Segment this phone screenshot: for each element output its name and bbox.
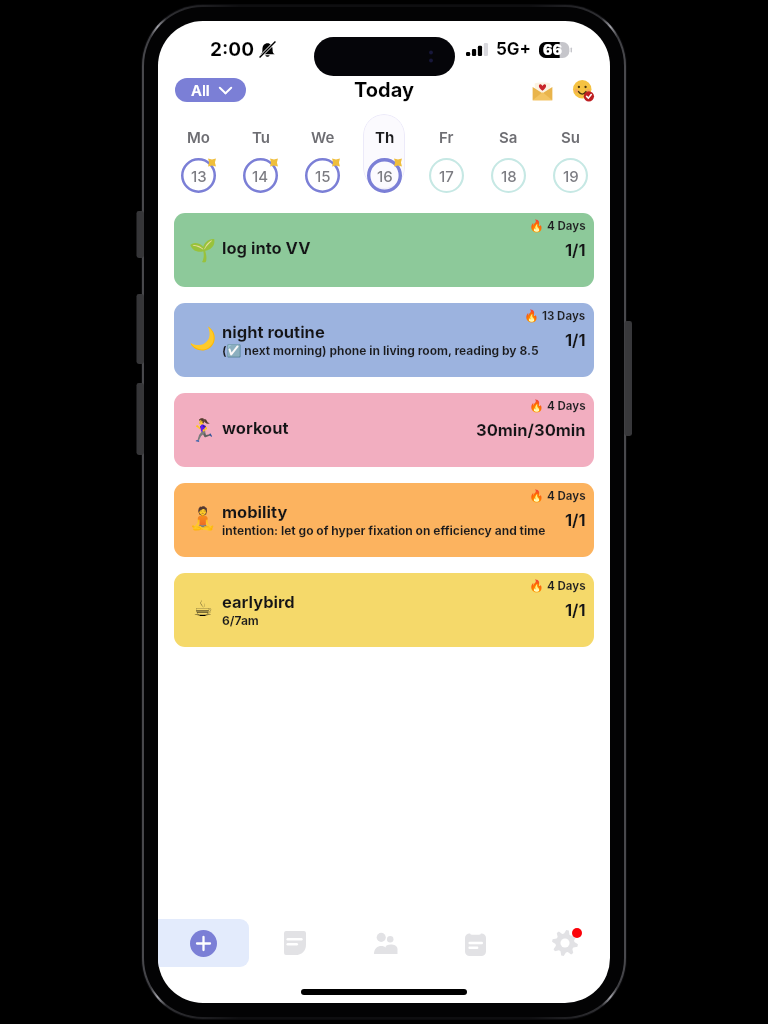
staticText: ☕ <box>193 596 213 622</box>
staticText: 🔥 <box>529 399 544 413</box>
staticText: 🔥 <box>529 489 544 503</box>
button[interactable]: 🔥 <box>174 573 594 647</box>
staticText: 6/7am <box>222 613 259 628</box>
staticText: 4 Days <box>547 399 586 413</box>
button[interactable]: Profile <box>572 79 594 101</box>
button[interactable]: Mo <box>171 111 225 197</box>
button[interactable]: Notes <box>249 914 340 972</box>
staticText: 🔥 <box>524 309 539 323</box>
button[interactable]: Settings <box>520 914 610 972</box>
staticText: 18 <box>501 167 517 185</box>
button[interactable]: Friends <box>340 914 430 972</box>
staticText: Mo <box>187 128 210 146</box>
staticText: Su <box>561 128 580 146</box>
staticText: earlybird <box>222 592 295 612</box>
staticText: 13 <box>191 167 207 185</box>
staticText: mobility <box>222 502 288 522</box>
button[interactable]: Messages <box>531 79 553 101</box>
staticText: Fr <box>439 128 454 146</box>
staticText: 14 <box>252 167 269 185</box>
staticText: intention: let go of hyper fixation on e… <box>222 523 546 538</box>
staticText: 🏃‍♀️ <box>189 418 217 444</box>
staticText: 4 Days <box>547 489 586 503</box>
staticText: 🌱 <box>189 238 217 264</box>
staticText: 2:00 <box>210 38 254 61</box>
button[interactable]: All <box>175 78 246 102</box>
button[interactable]: 🔥 <box>174 393 594 467</box>
staticText: log into VV <box>222 238 311 258</box>
button[interactable]: Sa <box>481 111 535 197</box>
staticText: 16 <box>377 167 393 185</box>
staticText: 17 <box>439 167 454 185</box>
button[interactable]: 🔥 <box>174 483 594 557</box>
staticText: 1/1 <box>565 240 586 260</box>
staticText: workout <box>222 418 289 438</box>
staticText: 🌙 <box>189 326 217 352</box>
staticText: 4 Days <box>547 579 586 593</box>
staticText: Sa <box>499 128 518 146</box>
staticText: 15 <box>315 167 331 185</box>
staticText: 1/1 <box>565 510 586 530</box>
staticText: Tu <box>252 128 270 146</box>
staticText: (☑️ next morning) phone in living room, … <box>222 343 539 358</box>
button[interactable]: Su <box>543 111 597 197</box>
button[interactable]: We <box>295 111 349 197</box>
staticText: 13 Days <box>542 309 586 323</box>
staticText: 4 Days <box>547 219 586 233</box>
staticText: 19 <box>563 167 579 185</box>
button[interactable]: Tasks <box>430 914 520 972</box>
button[interactable]: 🔥 <box>174 213 594 287</box>
staticText: 5G+ <box>496 39 532 60</box>
staticText: 🧘 <box>189 506 217 532</box>
staticText: We <box>311 128 335 146</box>
button[interactable]: 🔥 <box>174 303 594 377</box>
button[interactable]: Fr <box>419 111 473 197</box>
staticText: Th <box>375 128 395 146</box>
button[interactable]: Tu <box>233 111 287 197</box>
staticText: 1/1 <box>565 600 586 620</box>
staticText: night routine <box>222 322 325 342</box>
staticText: 66 <box>543 41 562 58</box>
staticText: All <box>191 81 210 99</box>
button[interactable]: Add habit <box>158 919 249 967</box>
button[interactable]: Th <box>357 111 411 197</box>
staticText: 🔥 <box>529 579 544 593</box>
staticText: Today <box>354 78 414 102</box>
staticText: 1/1 <box>565 330 586 350</box>
staticText: 🔥 <box>529 219 544 233</box>
staticText: 30min/30min <box>476 420 586 440</box>
